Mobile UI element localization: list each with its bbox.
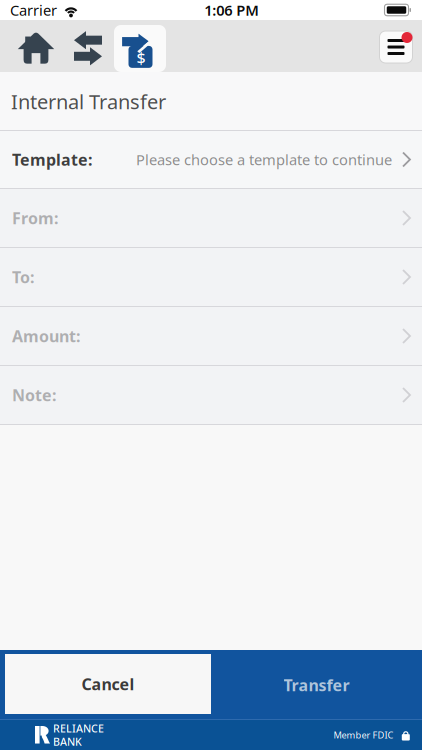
staticText: Member FDIC bbox=[334, 729, 394, 741]
staticText: BANK bbox=[53, 734, 82, 749]
button[interactable]: Home bbox=[10, 25, 62, 72]
button[interactable]: Cancel bbox=[5, 654, 211, 714]
staticText: From: bbox=[12, 207, 58, 229]
staticText: Internal Transfer bbox=[11, 88, 166, 115]
staticText: To: bbox=[12, 266, 34, 288]
button[interactable]: Menu bbox=[376, 25, 417, 72]
staticText: Note: bbox=[12, 384, 56, 406]
staticText: Template: bbox=[12, 149, 92, 170]
button[interactable]: From: bbox=[0, 189, 422, 247]
staticText: Transfer bbox=[283, 674, 349, 696]
staticText: Amount: bbox=[12, 325, 80, 347]
staticText: Please choose a template to continue bbox=[136, 150, 392, 169]
staticText: Cancel bbox=[81, 673, 134, 695]
button[interactable]: To: bbox=[0, 248, 422, 306]
button[interactable]: Note: bbox=[0, 366, 422, 424]
button[interactable]: Internal Transfer bbox=[114, 25, 166, 72]
button[interactable]: Amount: bbox=[0, 307, 422, 365]
button[interactable]: Template: bbox=[0, 131, 422, 188]
staticText: RELIANCE bbox=[53, 721, 104, 735]
button[interactable]: Transfer bbox=[211, 650, 422, 720]
staticText: $ bbox=[136, 47, 145, 68]
staticText: Carrier bbox=[10, 0, 57, 20]
button[interactable]: Transfers bbox=[62, 25, 114, 72]
staticText: 1:06 PM bbox=[204, 0, 259, 20]
